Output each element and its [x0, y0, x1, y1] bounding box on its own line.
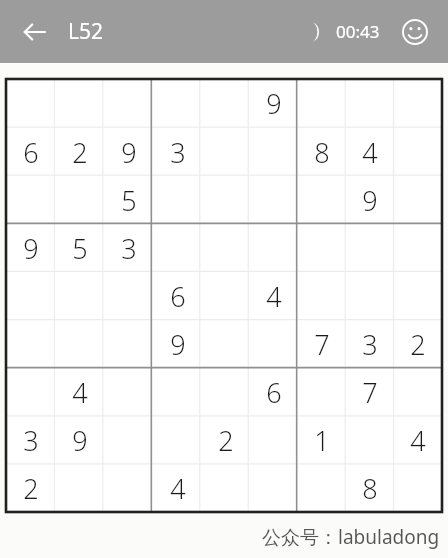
button[interactable] [346, 79, 394, 128]
button[interactable] [394, 224, 442, 272]
button[interactable]: 9 [250, 79, 298, 128]
button[interactable]: 4 [153, 464, 202, 512]
button[interactable] [6, 320, 55, 368]
button[interactable] [250, 464, 298, 512]
button[interactable] [6, 176, 55, 224]
button[interactable]: 7 [346, 368, 394, 416]
button[interactable] [298, 176, 346, 224]
button[interactable]: 4 [55, 368, 104, 416]
staticText: 4 [362, 134, 378, 171]
button[interactable]: 9 [104, 128, 153, 176]
button[interactable] [104, 272, 153, 320]
button[interactable]: 9 [55, 416, 104, 464]
button[interactable] [346, 416, 394, 464]
button[interactable] [153, 416, 202, 464]
button[interactable] [298, 464, 346, 512]
button[interactable] [55, 176, 104, 224]
button[interactable]: 9 [346, 176, 394, 224]
button[interactable]: 4 [394, 416, 442, 464]
button[interactable]: 2 [55, 128, 104, 176]
button[interactable] [153, 176, 202, 224]
staticText: 4 [266, 278, 282, 315]
button[interactable] [346, 272, 394, 320]
button[interactable] [6, 79, 55, 128]
button[interactable] [104, 416, 153, 464]
button[interactable]: 4 [250, 272, 298, 320]
button[interactable] [394, 464, 442, 512]
button[interactable] [202, 176, 250, 224]
button[interactable]: 3 [153, 128, 202, 176]
button[interactable] [55, 464, 104, 512]
button[interactable] [104, 79, 153, 128]
button[interactable]: 6 [6, 128, 55, 176]
button[interactable]: 5 [55, 224, 104, 272]
button[interactable]: Night mode [290, 14, 326, 50]
button[interactable] [202, 320, 250, 368]
staticText: 8 [314, 134, 330, 171]
button[interactable]: 4 [346, 128, 394, 176]
button[interactable]: Difficulty [396, 13, 434, 51]
button[interactable]: 3 [6, 416, 55, 464]
button[interactable] [202, 128, 250, 176]
button[interactable] [250, 128, 298, 176]
button[interactable]: 3 [346, 320, 394, 368]
button[interactable] [104, 368, 153, 416]
button[interactable] [298, 79, 346, 128]
button[interactable] [104, 320, 153, 368]
button[interactable] [153, 224, 202, 272]
button[interactable]: 9 [153, 320, 202, 368]
button[interactable]: 2 [202, 416, 250, 464]
button[interactable] [55, 320, 104, 368]
button[interactable]: 1 [298, 416, 346, 464]
staticText: 2 [218, 422, 234, 459]
button[interactable] [202, 368, 250, 416]
staticText: 7 [362, 374, 378, 411]
button[interactable] [346, 224, 394, 272]
button[interactable] [6, 368, 55, 416]
button[interactable] [298, 368, 346, 416]
staticText: 4 [170, 470, 186, 507]
button[interactable]: 2 [6, 464, 55, 512]
button[interactable]: 6 [250, 368, 298, 416]
button[interactable] [202, 79, 250, 128]
button[interactable] [394, 272, 442, 320]
button[interactable]: 2 [394, 320, 442, 368]
staticText: 3 [170, 134, 186, 171]
button[interactable] [394, 79, 442, 128]
button[interactable] [394, 128, 442, 176]
button[interactable] [250, 176, 298, 224]
button[interactable] [394, 176, 442, 224]
button[interactable]: 8 [346, 464, 394, 512]
button[interactable] [298, 224, 346, 272]
button[interactable] [250, 416, 298, 464]
button[interactable]: 3 [104, 224, 153, 272]
button[interactable] [250, 320, 298, 368]
button[interactable]: 7 [298, 320, 346, 368]
button[interactable] [104, 464, 153, 512]
button[interactable] [6, 272, 55, 320]
staticText: 3 [362, 326, 378, 363]
button[interactable]: 5 [104, 176, 153, 224]
staticText: 2 [23, 470, 39, 507]
button[interactable]: 6 [153, 272, 202, 320]
button[interactable]: Back [14, 12, 54, 52]
button[interactable]: 9 [6, 224, 55, 272]
button[interactable] [298, 272, 346, 320]
staticText: 4 [410, 422, 426, 459]
button[interactable] [55, 272, 104, 320]
button[interactable] [394, 368, 442, 416]
staticText: 6 [170, 278, 186, 315]
button[interactable] [202, 272, 250, 320]
button[interactable] [250, 224, 298, 272]
button[interactable]: 8 [298, 128, 346, 176]
button[interactable] [55, 79, 104, 128]
staticText: 8 [362, 470, 378, 507]
button[interactable] [202, 224, 250, 272]
staticText: 1 [314, 422, 330, 459]
button[interactable] [153, 368, 202, 416]
staticText: 9 [72, 422, 88, 459]
staticText: 5 [121, 182, 137, 219]
staticText: 5 [72, 230, 88, 267]
button[interactable] [153, 79, 202, 128]
button[interactable] [202, 464, 250, 512]
